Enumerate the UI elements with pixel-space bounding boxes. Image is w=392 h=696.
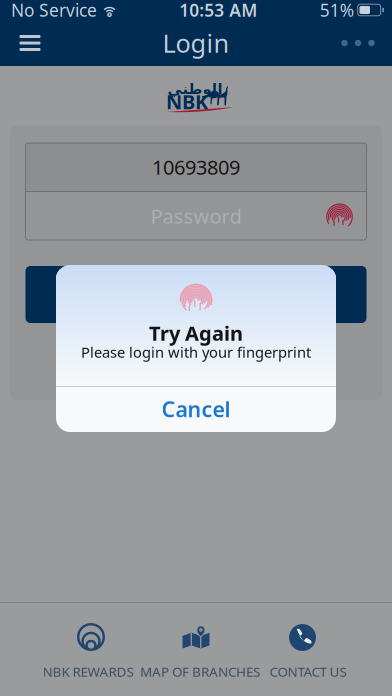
staticText: 51% [320,0,354,21]
staticText: Try Again [149,320,243,346]
button[interactable]: CONTACT US [258,603,392,696]
staticText: Please login with your fingerprint [81,342,311,362]
button[interactable]: NBK REWARDS [26,603,156,696]
staticText: Login [162,26,229,60]
staticText: LOGIN [162,280,230,309]
button[interactable]: LOGIN [25,266,366,323]
staticText: NBK REWARDS [42,663,133,680]
staticText: Cancel [161,395,230,423]
staticText: الوطني [167,81,222,97]
staticText: MAP OF BRANCHES [140,663,260,680]
button[interactable]: MAP OF BRANCHES [134,603,258,696]
button[interactable]: Menu [6,20,54,66]
staticText: 10:53 AM [179,0,257,21]
staticText: CONTACT US [269,663,346,680]
staticText: Password [150,203,241,229]
staticText: NBK [166,88,208,115]
staticText: No Service [11,0,97,21]
button[interactable]: Cancel [56,386,336,432]
staticText: 10693809 [152,154,240,180]
button[interactable]: More [330,20,386,66]
